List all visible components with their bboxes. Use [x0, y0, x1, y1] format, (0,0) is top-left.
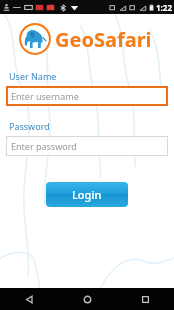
staticText: Enter username	[11, 90, 79, 102]
staticText: Login	[72, 187, 102, 202]
button[interactable]: Back	[0, 288, 58, 310]
button[interactable]: Enter password	[6, 136, 168, 156]
staticText: GeoSafari	[55, 26, 152, 53]
staticText: User Name	[9, 70, 57, 82]
button[interactable]: Enter username	[6, 86, 168, 106]
staticText: Enter password	[11, 140, 77, 152]
button[interactable]: Recent apps	[116, 288, 174, 310]
staticText: 1:22	[156, 2, 172, 13]
button[interactable]: Login	[46, 182, 128, 207]
staticText: Password	[9, 120, 50, 132]
button[interactable]: Home	[58, 288, 116, 310]
